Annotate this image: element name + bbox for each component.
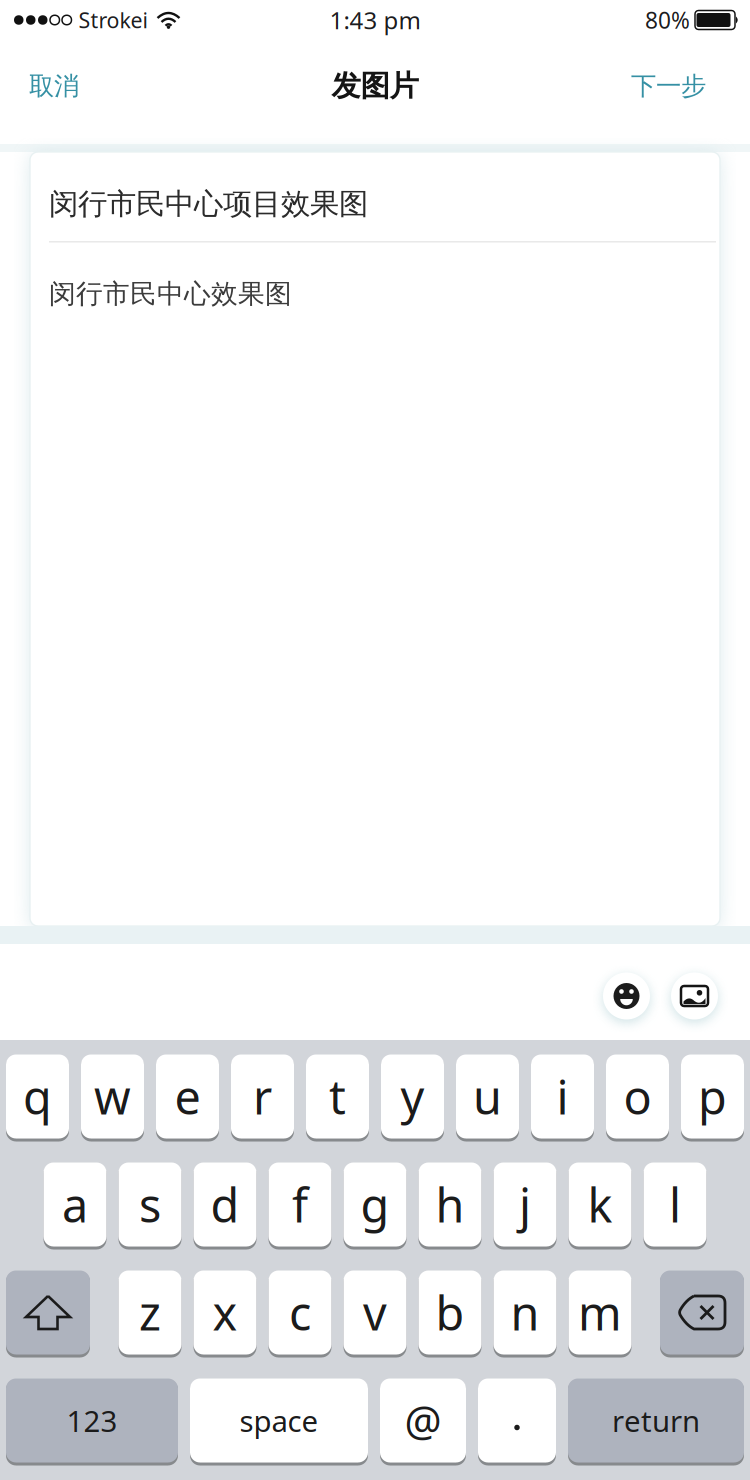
staticText: 取消 (29, 70, 79, 101)
staticText: 闵行市民中心效果图 (49, 277, 292, 310)
button[interactable]: y (381, 1054, 444, 1141)
staticText: 1:43 pm (329, 4, 420, 36)
button[interactable]: @ (380, 1378, 466, 1465)
button[interactable]: p (681, 1054, 744, 1141)
button[interactable]: t (306, 1054, 369, 1141)
staticText: a (62, 1173, 88, 1235)
staticText: v (363, 1281, 387, 1343)
button[interactable] (478, 1378, 556, 1465)
staticText: f (292, 1173, 308, 1235)
button[interactable]: z (118, 1270, 181, 1357)
button[interactable]: q (6, 1054, 69, 1141)
button[interactable]: v (343, 1270, 406, 1357)
button[interactable]: j (493, 1162, 556, 1249)
staticText: 80% (645, 5, 690, 35)
button[interactable]: Delete (660, 1270, 744, 1357)
button[interactable]: Emoji (603, 972, 650, 1019)
button[interactable]: w (81, 1054, 144, 1141)
button[interactable]: s (118, 1162, 181, 1249)
button[interactable]: return (568, 1378, 744, 1465)
staticText: l (669, 1173, 681, 1235)
button[interactable]: h (418, 1162, 481, 1249)
staticText: Strokei (78, 6, 148, 34)
staticText: space (239, 1401, 318, 1440)
staticText: m (578, 1281, 622, 1343)
staticText: g (360, 1173, 389, 1235)
button[interactable]: g (343, 1162, 406, 1249)
button[interactable]: n (493, 1270, 556, 1357)
button[interactable]: e (156, 1054, 219, 1141)
staticText: s (139, 1173, 161, 1235)
staticText: q (23, 1065, 52, 1127)
staticText: t (329, 1065, 346, 1127)
button[interactable]: k (568, 1162, 631, 1249)
staticText: r (253, 1065, 272, 1127)
button[interactable]: f (268, 1162, 331, 1249)
button[interactable]: i (531, 1054, 594, 1141)
button[interactable]: x (193, 1270, 256, 1357)
button[interactable]: b (418, 1270, 481, 1357)
staticText: e (174, 1065, 200, 1127)
staticText: u (473, 1065, 502, 1127)
staticText: x (212, 1281, 237, 1343)
staticText: w (94, 1065, 131, 1127)
staticText: p (698, 1065, 727, 1127)
button[interactable]: a (43, 1162, 106, 1249)
button[interactable]: d (193, 1162, 256, 1249)
button[interactable]: Add photo (671, 972, 718, 1019)
staticText: @ (404, 1393, 441, 1448)
button[interactable]: r (231, 1054, 294, 1141)
staticText: 闵行市民中心项目效果图 (49, 186, 368, 222)
staticText: z (139, 1281, 161, 1343)
button[interactable]: Shift (6, 1270, 90, 1357)
button[interactable]: 123 (6, 1378, 178, 1465)
staticText: j (519, 1173, 531, 1235)
staticText: o (623, 1065, 651, 1127)
button[interactable]: c (268, 1270, 331, 1357)
staticText: 下一步 (631, 70, 706, 101)
staticText: i (556, 1065, 568, 1127)
staticText: return (612, 1401, 700, 1440)
staticText: 发图片 (331, 68, 418, 104)
staticText: 123 (66, 1401, 117, 1440)
button[interactable]: 下一步 (631, 52, 750, 119)
staticText: c (289, 1281, 311, 1343)
button[interactable]: o (606, 1054, 669, 1141)
staticText: k (587, 1173, 612, 1235)
button[interactable]: l (643, 1162, 706, 1249)
staticText: b (435, 1281, 464, 1343)
button[interactable]: m (568, 1270, 631, 1357)
staticText: y (400, 1065, 424, 1127)
button[interactable]: space (190, 1378, 368, 1465)
staticText: n (510, 1281, 539, 1343)
button[interactable]: u (456, 1054, 519, 1141)
staticText: h (435, 1173, 464, 1235)
button[interactable]: 取消 (0, 52, 79, 119)
staticText: d (210, 1173, 239, 1235)
